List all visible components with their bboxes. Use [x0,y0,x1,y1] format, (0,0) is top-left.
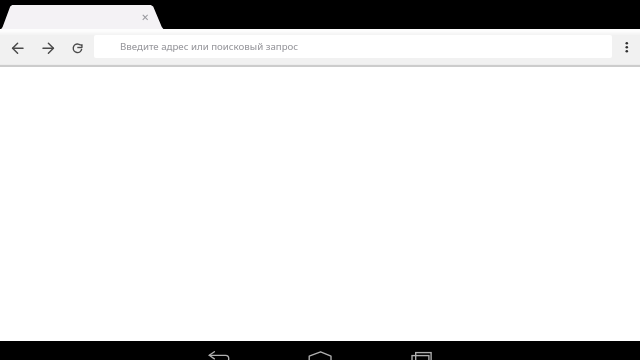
button[interactable]: Recent apps [405,341,437,360]
button[interactable]: Back [203,341,235,360]
button[interactable]: Browser tab [0,0,640,29]
button[interactable]: Forward [36,36,59,59]
button[interactable]: Close tab [139,11,152,24]
staticText: Введите адрес или поисковый запрос [120,40,299,53]
button[interactable]: Введите адрес или поисковый запрос [94,35,612,58]
button[interactable]: Home [305,341,337,360]
button[interactable]: Reload page [66,36,89,59]
button[interactable]: Back [6,36,29,59]
button[interactable]: More options [616,36,638,58]
